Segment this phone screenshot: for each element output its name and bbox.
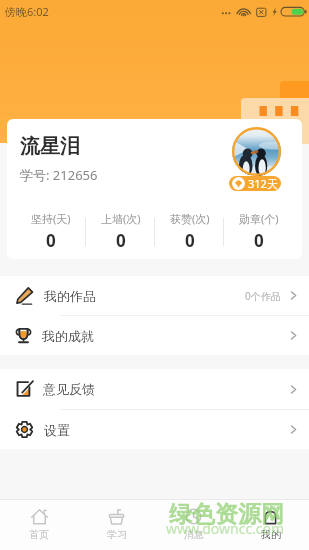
- staticText: 坚持(天): [31, 211, 71, 226]
- button[interactable]: 勋章(个): [224, 211, 293, 252]
- button[interactable]: 坚持(天): [16, 211, 86, 252]
- staticText: 0: [46, 229, 56, 252]
- staticText: 首页: [29, 528, 49, 541]
- staticText: 傍晚6:02: [5, 4, 49, 19]
- button[interactable]: 学习: [78, 500, 155, 550]
- staticText: 0: [254, 229, 264, 252]
- staticText: 设置: [44, 422, 70, 438]
- other: 我的: [262, 508, 279, 525]
- staticText: 我的: [261, 528, 281, 541]
- staticText: 勋章(个): [239, 211, 279, 226]
- staticText: 上墙(次): [101, 211, 141, 226]
- other: 消息: [185, 508, 202, 525]
- button[interactable]: 消息: [155, 500, 232, 550]
- button[interactable]: 设置: [0, 410, 309, 449]
- other: 首页: [31, 508, 48, 525]
- staticText: 0: [116, 229, 126, 252]
- button[interactable]: 上墙(次): [86, 211, 155, 252]
- staticText: 0个作品: [245, 289, 281, 303]
- staticText: www.downcc.com: [166, 519, 285, 538]
- staticText: 获赞(次): [170, 211, 210, 226]
- button[interactable]: 312天: [229, 176, 281, 191]
- button[interactable]: 我的成就: [0, 316, 309, 355]
- staticText: 我的作品: [44, 288, 96, 304]
- staticText: 绿色资源网: [169, 500, 284, 529]
- staticText: 学习: [107, 528, 127, 541]
- staticText: 流星泪: [20, 134, 80, 159]
- button[interactable]: 首页: [0, 500, 78, 550]
- staticText: 0: [185, 229, 195, 252]
- staticText: 消息: [184, 528, 204, 541]
- staticText: 312天: [248, 176, 278, 191]
- staticText: 学号: 212656: [20, 166, 98, 184]
- staticText: 我的成就: [42, 328, 94, 344]
- button[interactable]: 我的作品: [0, 276, 309, 315]
- button[interactable]: 获赞(次): [155, 211, 224, 252]
- button[interactable]: 我的: [232, 500, 309, 550]
- button[interactable]: 意见反馈: [0, 369, 309, 409]
- other: 学习: [108, 508, 125, 525]
- staticText: 意见反馈: [43, 381, 95, 397]
